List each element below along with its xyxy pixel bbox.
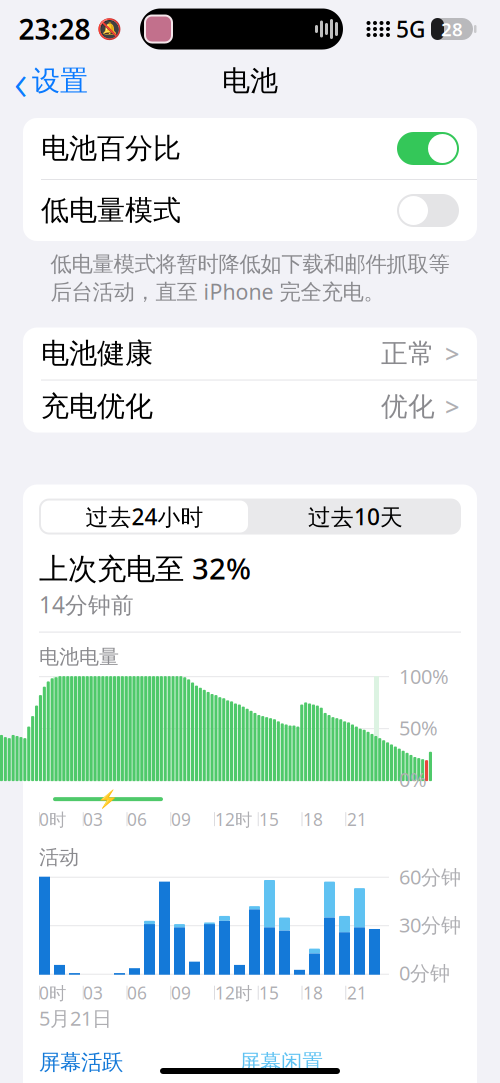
staticText: 过去24小时 [85,501,203,532]
staticText: 🔕 [96,18,121,40]
button[interactable]: 低电量模式 [23,180,477,241]
button[interactable]: 电池百分比 [23,118,477,179]
staticText: 5G [396,14,425,44]
button[interactable]: ‹ [0,43,88,119]
staticText: 21 [347,808,367,831]
button[interactable]: 电池健康 [23,327,477,379]
staticText: 屏幕闲置 [239,1049,323,1075]
button[interactable]: 充电优化 [23,380,477,432]
staticText: 03 [83,808,103,831]
staticText: 低电量模式将暂时降低如下载和邮件抓取等后台活动，直至 iPhone 完全充电。 [50,251,449,305]
staticText: 23:28 [18,10,90,48]
staticText: 屏幕活跃 [39,1049,123,1075]
staticText: 上次充电至 32% [39,548,251,587]
staticText: 06 [127,981,147,1004]
staticText: 0时 [39,981,66,1004]
staticText: 0% [399,766,427,792]
staticText: 09 [171,981,191,1004]
staticText: 03 [83,981,103,1004]
staticText: 28 [441,17,463,41]
staticText: 电池电量 [39,645,119,669]
staticText: 60分钟 [399,863,461,890]
staticText: 5月21日 [39,1005,112,1031]
staticText: > [445,390,459,423]
staticText: 设置 [32,64,88,98]
button[interactable]: 过去10天 [250,498,461,534]
staticText: 18 [303,808,323,831]
staticText: 100% [399,663,449,689]
staticText: 50% [399,714,438,741]
staticText: 0时 [39,808,66,831]
staticText: 21 [347,981,367,1004]
staticText: 0分钟 [399,959,450,986]
staticText: 14分钟前 [39,589,134,620]
staticText: 30分钟 [399,911,461,938]
staticText: 06 [127,808,147,831]
staticText: ‹ [14,47,27,115]
staticText: 活动 [39,845,79,870]
staticText: 18 [303,981,323,1004]
staticText: 15 [259,981,279,1004]
staticText: 低电量模式 [41,193,181,228]
staticText: 电池 [222,64,278,98]
staticText: > [445,337,459,370]
staticText: 正常 [381,337,435,370]
staticText: ⚡ [97,789,119,809]
button[interactable]: 过去24小时 [39,498,250,534]
staticText: 优化 [381,390,435,423]
staticText: 电池健康 [41,336,153,371]
staticText: 12时 [215,981,252,1004]
staticText: 充电优化 [41,389,153,424]
staticText: 电池百分比 [41,131,181,166]
staticText: 过去10天 [308,501,403,532]
staticText: 09 [171,808,191,831]
staticText: 15 [259,808,279,831]
staticText: 12时 [215,808,252,831]
